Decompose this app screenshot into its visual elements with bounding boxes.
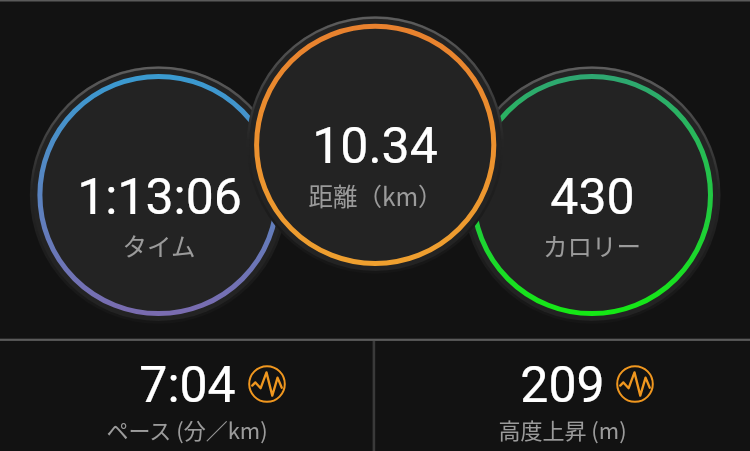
button[interactable] bbox=[473, 148, 711, 266]
staticText: 209 bbox=[520, 356, 605, 415]
button[interactable]: Heart rate bbox=[248, 365, 286, 403]
button[interactable] bbox=[40, 148, 278, 266]
button[interactable] bbox=[256, 97, 494, 215]
staticText: 430 bbox=[550, 168, 635, 227]
staticText: 高度上昇 (m) bbox=[498, 413, 627, 445]
staticText: 10.34 bbox=[312, 117, 438, 176]
staticText: カロリー bbox=[543, 228, 641, 263]
button[interactable]: Heart rate bbox=[616, 365, 654, 403]
button[interactable] bbox=[375, 341, 749, 451]
staticText: 距離（km） bbox=[308, 178, 443, 213]
staticText: ペース (分／km) bbox=[106, 413, 268, 445]
staticText: タイム bbox=[122, 228, 196, 263]
staticText: 1:13:06 bbox=[77, 168, 242, 227]
staticText: 7:04 bbox=[139, 356, 236, 415]
button[interactable] bbox=[0, 341, 374, 451]
